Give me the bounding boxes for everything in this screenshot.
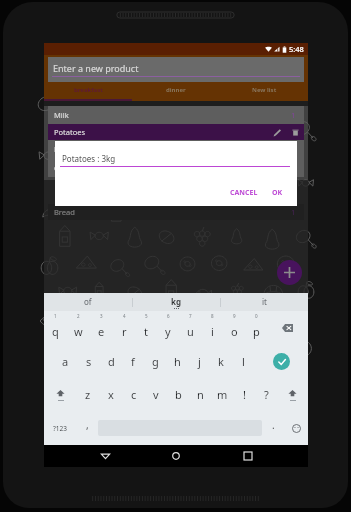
staticText: 4 (123, 313, 126, 319)
staticText: o (231, 324, 238, 339)
button[interactable]: 7 (179, 311, 201, 345)
button[interactable]: ! (233, 378, 255, 411)
button[interactable]: s (77, 345, 100, 378)
button[interactable]: l (232, 345, 254, 378)
button[interactable]: z (76, 378, 99, 411)
button[interactable]: Shift (44, 378, 76, 411)
button[interactable]: b (167, 378, 189, 411)
button[interactable]: Edit (272, 127, 283, 138)
staticText: x (108, 387, 114, 402)
staticText: l (242, 354, 245, 369)
staticText: 1 (291, 110, 296, 120)
button[interactable]: 2 (67, 311, 90, 345)
button[interactable]: 5 (135, 311, 157, 345)
button[interactable]: Shift (277, 378, 308, 411)
button[interactable]: . (262, 411, 284, 445)
button[interactable]: f (122, 345, 144, 378)
staticText: OK (272, 188, 283, 198)
button[interactable]: Enter a new product (48, 57, 304, 82)
staticText: h (174, 354, 181, 369)
staticText: k (218, 354, 224, 369)
button[interactable]: ?123 (44, 411, 76, 445)
button[interactable]: d (100, 345, 122, 378)
staticText: 1 (54, 313, 57, 319)
button[interactable]: Backspace (267, 311, 308, 345)
button[interactable]: Cheese (48, 158, 304, 177)
button[interactable]: , (76, 411, 98, 445)
staticText: Bread (54, 207, 75, 217)
button[interactable]: dinner (132, 82, 220, 101)
button[interactable]: CANCEL (227, 186, 261, 200)
staticText: Potatoes : 3kg (62, 153, 116, 164)
staticText: CANCEL (230, 188, 258, 198)
button[interactable]: c (122, 378, 145, 411)
staticText: 8 (211, 313, 214, 319)
staticText: g (152, 354, 159, 369)
staticText: u (187, 324, 194, 339)
staticText: y (165, 324, 171, 339)
button[interactable]: Milk (48, 106, 304, 124)
staticText: 0 (255, 313, 258, 319)
button[interactable]: ? (255, 378, 277, 411)
staticText: Cheese (54, 163, 80, 173)
button[interactable]: x (99, 378, 122, 411)
button[interactable]: Add product (277, 260, 302, 285)
button[interactable]: j (188, 345, 210, 378)
button[interactable]: h (166, 345, 188, 378)
button[interactable]: Bread (48, 204, 304, 220)
staticText: Enter a new product (53, 62, 139, 74)
staticText: v (153, 387, 159, 402)
button[interactable]: Potatoes (48, 124, 304, 140)
button[interactable]: New list (220, 82, 308, 101)
staticText: ? (264, 387, 269, 402)
button[interactable]: 4 (113, 311, 135, 345)
button[interactable]: breakfast (44, 82, 132, 101)
button[interactable]: of (44, 293, 132, 311)
button[interactable]: m (211, 378, 233, 411)
button[interactable]: it (221, 293, 308, 311)
button[interactable]: Home (165, 445, 187, 467)
staticText: ?123 (53, 424, 67, 433)
staticText: kg (171, 296, 182, 307)
staticText: 6 (167, 313, 170, 319)
button[interactable]: Recents (237, 445, 259, 467)
button[interactable]: Back (94, 445, 116, 467)
staticText: s (86, 354, 92, 369)
staticText: i (211, 324, 214, 339)
staticText: it (262, 296, 267, 307)
button[interactable]: Enter (254, 345, 308, 378)
staticText: , (86, 418, 89, 432)
staticText: j (198, 354, 201, 369)
button[interactable]: 3 (90, 311, 113, 345)
staticText: p (253, 324, 260, 339)
staticText: 5:48 (289, 44, 304, 54)
staticText: m (217, 387, 228, 402)
button[interactable]: 6 (157, 311, 179, 345)
button[interactable]: 8 (201, 311, 223, 345)
staticText: 3 (100, 313, 103, 319)
button[interactable]: 9 (223, 311, 245, 345)
staticText: f (131, 354, 135, 369)
button[interactable]: Delete (290, 127, 301, 138)
staticText: 5 (145, 313, 148, 319)
button[interactable]: kg (133, 293, 220, 311)
button[interactable]: a (54, 345, 77, 378)
button[interactable]: n (189, 378, 211, 411)
staticText: b (175, 387, 182, 402)
button[interactable]: OK (269, 186, 297, 200)
staticText: Eggs (54, 144, 71, 154)
button[interactable]: Eggs (48, 140, 304, 158)
button[interactable]: 1 (44, 311, 67, 345)
staticText: ! (243, 387, 246, 402)
staticText: a (62, 354, 69, 369)
button[interactable]: g (144, 345, 166, 378)
button[interactable]: k (210, 345, 232, 378)
button[interactable]: 0 (245, 311, 267, 345)
staticText: d (108, 354, 115, 369)
button[interactable]: Emoji (284, 411, 308, 445)
staticText: New list (252, 86, 277, 94)
button[interactable]: v (145, 378, 167, 411)
